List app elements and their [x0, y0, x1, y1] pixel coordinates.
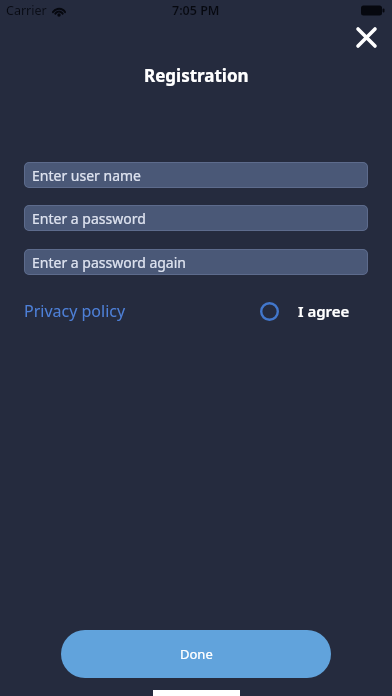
button[interactable]: Enter user name	[24, 162, 368, 188]
staticText: 7:05 PM	[172, 2, 220, 19]
button[interactable]: Enter a password again	[24, 249, 368, 275]
staticText: Carrier	[6, 2, 47, 19]
button[interactable]: Done	[61, 630, 331, 678]
button[interactable]	[353, 24, 379, 50]
button[interactable]: Enter a password	[24, 205, 368, 231]
staticText: Registration	[144, 64, 249, 87]
staticText: Done	[180, 645, 213, 663]
staticText: Enter user name	[32, 166, 141, 185]
staticText: I agree	[298, 301, 350, 321]
staticText: Enter a password again	[32, 253, 186, 272]
staticText: Enter a password	[32, 209, 146, 228]
button[interactable]	[258, 300, 280, 322]
button[interactable]: Privacy policy	[24, 300, 126, 322]
